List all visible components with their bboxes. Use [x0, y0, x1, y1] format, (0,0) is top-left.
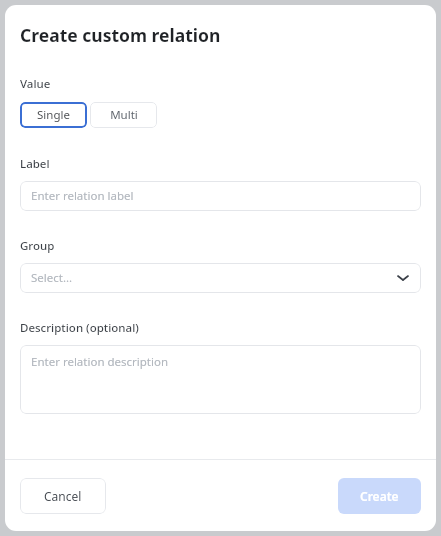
- staticText: Enter relation description: [31, 354, 169, 370]
- staticText: Create custom relation: [20, 23, 221, 47]
- staticText: Create: [360, 488, 399, 504]
- staticText: Multi: [110, 107, 138, 123]
- staticText: Value: [20, 76, 51, 92]
- button[interactable]: Multi: [90, 102, 157, 128]
- staticText: Description (optional): [20, 320, 139, 336]
- staticText: Enter relation label: [31, 188, 134, 204]
- button[interactable]: Select group: [20, 263, 421, 293]
- button[interactable]: Create: [338, 478, 421, 514]
- staticText: Single: [37, 107, 70, 123]
- staticText: Select...: [31, 270, 73, 286]
- button[interactable]: Enter relation label: [20, 181, 421, 211]
- button[interactable]: Cancel: [20, 478, 106, 514]
- staticText: Label: [20, 156, 50, 172]
- staticText: Group: [20, 238, 55, 254]
- button[interactable]: Enter relation description: [20, 345, 421, 414]
- button[interactable]: Single: [20, 102, 87, 128]
- staticText: Cancel: [44, 488, 82, 504]
